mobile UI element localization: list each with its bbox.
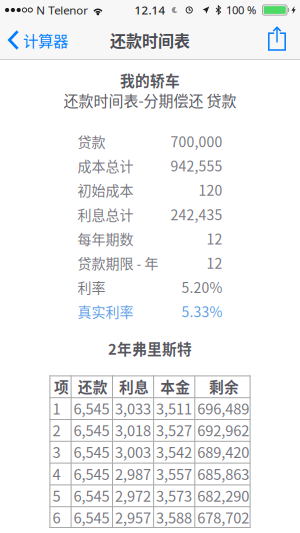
staticText: 2年弗里斯特 xyxy=(108,338,192,359)
staticText: 项 xyxy=(54,376,69,397)
staticText: 696,489 xyxy=(197,397,249,419)
staticText: 692,962 xyxy=(197,419,249,440)
staticText: 计算器 xyxy=(23,29,68,51)
staticText: 6,545 xyxy=(74,441,110,462)
staticText: 120 xyxy=(198,180,222,200)
staticText: 3,557 xyxy=(156,463,192,484)
staticText: 682,290 xyxy=(197,485,249,506)
staticText: 689,420 xyxy=(197,441,249,462)
staticText: 贷款期限 - 年 xyxy=(77,252,158,273)
staticText: 利息 xyxy=(119,376,149,397)
staticText: 3 xyxy=(52,441,60,462)
staticText: 利息总计 xyxy=(77,204,133,224)
button[interactable]: Share xyxy=(258,20,300,60)
staticText: 贷款 xyxy=(77,131,105,151)
staticText: 利率 xyxy=(77,277,105,297)
staticText: 100 % xyxy=(226,2,256,18)
staticText: 3,003 xyxy=(115,441,151,462)
staticText: 6 xyxy=(52,506,60,528)
staticText: 3,018 xyxy=(115,419,151,440)
staticText: 6,545 xyxy=(74,419,110,440)
staticText: 12 xyxy=(206,252,222,273)
staticText: 2 xyxy=(52,419,60,440)
staticText: 942,555 xyxy=(170,155,222,176)
staticText: 5 xyxy=(52,485,60,506)
staticText: 5.33% xyxy=(181,301,222,321)
staticText: 我的轿车 xyxy=(120,69,180,91)
staticText: 700,000 xyxy=(170,131,222,151)
staticText: 还款 xyxy=(78,376,108,397)
staticText: 每年期数 xyxy=(77,228,133,248)
staticText: 初始成本 xyxy=(77,180,133,200)
staticText: 2,957 xyxy=(115,506,151,528)
staticText: 3,033 xyxy=(115,397,151,419)
staticText: 6,545 xyxy=(74,463,110,484)
staticText: 成本总计 xyxy=(77,155,133,176)
staticText: 3,542 xyxy=(156,441,192,462)
staticText: 还款时间表 xyxy=(110,28,190,52)
staticText: 1 xyxy=(52,397,60,419)
staticText: 2,987 xyxy=(115,463,151,484)
button[interactable]: 计算器 xyxy=(0,20,74,60)
staticText: 3,511 xyxy=(156,397,192,419)
staticText: 12.14 xyxy=(134,2,165,18)
staticText: 剩余 xyxy=(209,376,239,397)
staticText: 2,972 xyxy=(115,485,151,506)
staticText: 12 xyxy=(206,228,222,248)
staticText: 6,545 xyxy=(74,506,110,528)
staticText: 6,545 xyxy=(74,485,110,506)
staticText: 678,702 xyxy=(197,506,249,528)
staticText: 还款时间表-分期偿还 贷款 xyxy=(63,89,236,111)
staticText: 真实利率 xyxy=(77,301,133,321)
staticText: 5.20% xyxy=(181,277,222,297)
staticText: 242,435 xyxy=(170,204,222,224)
staticText: N Telenor xyxy=(36,2,88,18)
staticText: 3,573 xyxy=(156,485,192,506)
staticText: 4 xyxy=(52,463,60,484)
staticText: 本金 xyxy=(160,376,190,397)
staticText: 3,527 xyxy=(156,419,192,440)
staticText: 685,863 xyxy=(197,463,249,484)
staticText: 3,588 xyxy=(156,506,192,528)
staticText: 6,545 xyxy=(74,397,110,419)
